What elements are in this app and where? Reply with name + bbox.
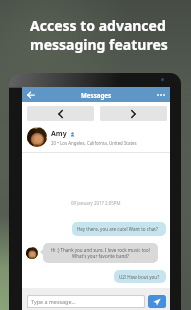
staticText: 20 • Los Angeles, California, United Sta… [51,140,137,146]
staticText: Access to advanced [30,16,166,35]
button[interactable]: Previous [27,106,94,121]
staticText: 09 January 2017 2:05PM [71,200,121,206]
button[interactable]: Hi :) Thank you and sure, I love rock mu… [43,243,158,263]
staticText: Hi :) Thank you and sure, I love rock mu… [48,247,153,259]
button[interactable]: Hey there, you are cute! Want to chat? [72,222,166,236]
staticText: Amy [51,129,67,139]
button[interactable]: Next [100,106,167,121]
button[interactable]: U2! How bout you? [114,270,166,283]
staticText: Messages [81,91,112,99]
staticText: Hey there, you are cute! Want to chat? [77,226,161,232]
staticText: Type a message... [31,298,76,305]
button[interactable]: Type a message... [28,296,144,307]
button[interactable]: Send [148,295,166,308]
button[interactable]: Back [25,89,37,101]
staticText: messaging features [30,35,168,54]
button[interactable]: More options [155,89,167,101]
button[interactable]: Amy [22,123,170,151]
staticText: U2! How bout you? [119,274,161,280]
